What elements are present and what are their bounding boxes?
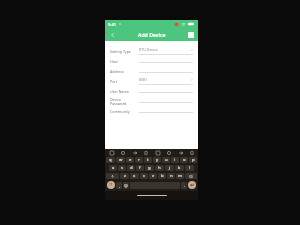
button[interactable]: Keyboard tool 4 [155,150,160,155]
button[interactable]: c [140,173,148,179]
staticText: ?1 [109,183,113,187]
staticText: i [174,157,176,163]
staticText: Community [110,109,130,114]
button[interactable]: p [189,157,197,163]
staticText: c [143,173,146,179]
button[interactable]: Back [107,29,118,40]
staticText: 8081 [139,77,148,82]
button[interactable]: Address [110,66,193,76]
button[interactable]: b [158,173,166,179]
staticText: Port [110,79,118,84]
button[interactable]: z [120,173,129,179]
button[interactable]: Keyboard tool 7 [189,150,194,155]
staticText: s [121,165,124,171]
button[interactable]: r [135,157,143,163]
button[interactable]: i [171,157,179,163]
staticText: d [130,165,133,171]
staticText: Host [110,59,118,64]
staticText: r [138,157,140,163]
staticText: y [156,157,159,163]
staticText: 9:41 [108,22,116,27]
button[interactable]: Keyboard tool 2 [132,150,137,155]
button[interactable]: User Name [110,86,193,96]
staticText: j [169,165,171,171]
button[interactable]: v [149,173,157,179]
button[interactable]: Emoji [123,182,129,189]
button[interactable]: Save [185,29,196,40]
button[interactable]: l [185,165,194,171]
staticText: g [148,165,151,171]
button[interactable]: k [175,165,184,171]
staticText: e [129,157,132,163]
button[interactable]: Shift [106,173,119,179]
staticText: w [119,157,123,163]
button[interactable]: y [153,157,161,163]
staticText: p [192,157,195,163]
staticText: b [161,173,164,179]
staticText: Setting Type [110,49,131,54]
staticText: , [119,183,120,188]
staticText: z [124,173,126,179]
staticText: RTU Device [139,47,158,52]
staticText: u [165,157,168,163]
button[interactable]: Host [110,56,193,66]
button[interactable]: u [162,157,170,163]
staticText: t [147,157,149,163]
button[interactable]: Enter [188,181,196,189]
staticText: m [178,173,182,179]
staticText: k [178,165,181,171]
button[interactable]: q [106,157,115,163]
button[interactable]: Symbols [107,181,115,189]
staticText: x [133,173,136,179]
button[interactable]: a [109,165,117,171]
button[interactable]: o [180,157,188,163]
staticText: a [112,165,115,171]
button[interactable]: Keyboard tool 3 [143,150,148,155]
button[interactable]: Keyboard tool 5 [166,150,171,155]
button[interactable]: h [155,165,164,171]
staticText: Add Device [138,31,166,38]
button[interactable]: Community [110,106,193,116]
staticText: User Name [110,89,129,94]
staticText: n [170,173,173,179]
button[interactable]: x [130,173,139,179]
button[interactable]: w [116,157,125,163]
staticText: l [189,165,191,171]
staticText: h [158,165,161,171]
button[interactable]: Keyboard tool 1 [120,150,125,155]
button[interactable]: g [145,165,154,171]
button[interactable]: Device Password [110,96,193,106]
button[interactable]: n [167,173,175,179]
button[interactable]: Setting Type [110,46,193,56]
staticText: . [184,183,185,188]
button[interactable]: Keyboard tool 6 [178,150,183,155]
button[interactable]: m [176,173,184,179]
staticText: f [139,165,141,171]
button[interactable]: Port [110,76,193,86]
button[interactable]: f [136,165,144,171]
staticText: Address [110,69,124,74]
button[interactable]: Keyboard tool 0 [109,150,114,155]
button[interactable]: j [165,165,174,171]
button[interactable]: e [126,157,134,163]
button[interactable]: . [181,182,187,189]
button[interactable]: d [127,165,135,171]
staticText: Device Password [110,97,127,106]
staticText: o [183,157,186,163]
staticText: q [109,157,112,163]
button[interactable]: t [144,157,152,163]
staticText: v [152,173,155,179]
button[interactable]: s [118,165,126,171]
staticText: ☺ [124,184,128,188]
button[interactable]: Backspace [185,173,197,179]
button[interactable]: , [116,182,122,189]
